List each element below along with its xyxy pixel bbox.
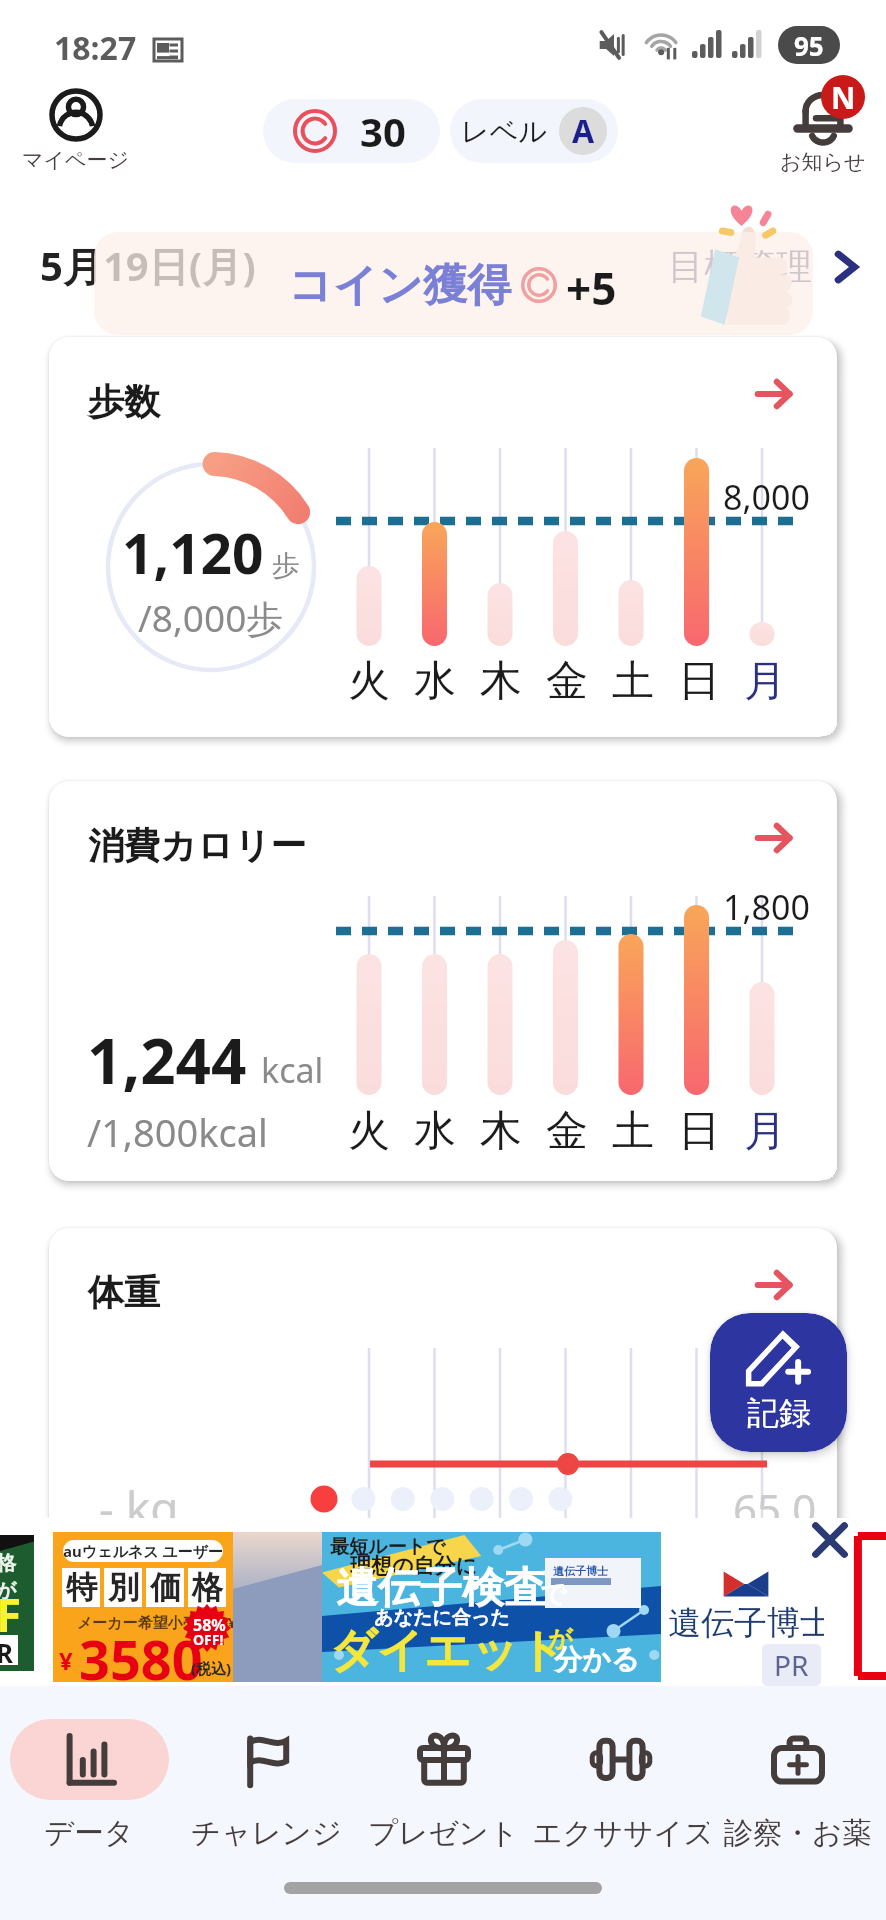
staticText: (税込) <box>191 1658 232 1678</box>
staticText: 18:27 <box>54 26 137 70</box>
staticText: 3580 <box>79 1622 203 1696</box>
button[interactable]: データ <box>0 1719 178 1852</box>
staticText: 日 <box>678 655 720 708</box>
button[interactable]: プレゼント <box>355 1719 532 1852</box>
staticText: 記録 <box>747 1393 811 1433</box>
button[interactable]: 詳細 <box>753 817 795 859</box>
button[interactable]: auウェルネス ユーザー様 <box>53 1532 233 1682</box>
staticText: 歩 <box>272 548 300 583</box>
staticText: 消費カロリー <box>88 823 307 868</box>
staticText: 火 <box>348 1105 390 1158</box>
staticText: 分かる <box>554 1642 640 1677</box>
staticText: +5 <box>566 258 617 318</box>
staticText: 遺伝子博士 <box>668 1602 824 1644</box>
staticText: F <box>0 1583 22 1646</box>
staticText: 1,800 <box>723 884 810 930</box>
staticText: コイン獲得 <box>288 258 512 313</box>
staticText: - kg <box>99 1476 179 1539</box>
staticText: PR <box>774 1646 809 1684</box>
staticText: 8,000 <box>723 474 810 520</box>
staticText: 土 <box>612 655 654 708</box>
staticText: 水 <box>414 1105 456 1158</box>
staticText: 格が <box>0 1551 30 1603</box>
staticText: 遺伝子検査 <box>336 1562 546 1615</box>
staticText: /1,800kcal <box>87 1106 268 1158</box>
staticText: 木 <box>480 655 522 708</box>
button[interactable]: 歩数 <box>49 337 837 737</box>
staticText: 別 <box>108 1568 139 1607</box>
staticText: 価 <box>150 1568 181 1607</box>
staticText: 1,120 <box>122 515 264 590</box>
staticText: 月 <box>744 1105 786 1158</box>
staticText: 遺伝子博士 <box>553 1564 608 1578</box>
staticText: N <box>831 77 856 118</box>
staticText: 診察・お薬 <box>723 1815 872 1852</box>
button[interactable]: 詳細 <box>753 373 795 415</box>
staticText: 最短ルートで <box>330 1535 446 1559</box>
staticText: A <box>572 109 595 153</box>
button[interactable]: チャレンジ <box>178 1719 355 1852</box>
button[interactable]: 30 <box>263 99 440 163</box>
button[interactable]: レベル <box>450 99 618 163</box>
staticText: 土 <box>612 1105 654 1158</box>
button[interactable]: 消費カロリー <box>49 781 837 1181</box>
staticText: 特 <box>66 1568 97 1607</box>
staticText: あなたに合った <box>374 1606 510 1630</box>
button[interactable]: 診察・お薬 <box>709 1719 886 1852</box>
staticText: エクササイズ <box>532 1815 709 1852</box>
staticText: メーカー希望小売価格¥8580 <box>77 1612 257 1632</box>
staticText: ¥ <box>59 1644 73 1677</box>
button[interactable]: 目標管理 <box>664 240 866 293</box>
staticText: 目標管理 <box>668 244 812 289</box>
button[interactable]: 閉じる <box>806 1516 854 1564</box>
staticText: 日 <box>678 1105 720 1158</box>
staticText: kcal <box>261 1047 324 1093</box>
staticText: 金 <box>546 1105 588 1158</box>
staticText: ダイエット <box>330 1622 566 1680</box>
staticText: 水 <box>414 655 456 708</box>
button[interactable]: N <box>774 88 872 175</box>
staticText: 95 <box>794 28 824 63</box>
button[interactable]: 詳細 <box>753 1264 795 1306</box>
button[interactable]: マイページ <box>16 88 135 173</box>
staticText: マイページ <box>22 147 129 173</box>
staticText: が <box>548 1624 573 1654</box>
staticText: 理想の自分に <box>350 1553 477 1579</box>
staticText: お知らせ <box>780 149 866 175</box>
staticText: 金 <box>546 655 588 708</box>
staticText: で <box>540 1578 567 1611</box>
staticText: 格 <box>192 1568 223 1607</box>
staticText: 火 <box>348 655 390 708</box>
staticText: チャレンジ <box>191 1815 342 1852</box>
staticText: /8,000歩 <box>138 592 284 643</box>
button[interactable]: エクササイズ <box>532 1719 709 1852</box>
staticText: 1,244 <box>87 1018 247 1102</box>
staticText: プレゼント <box>368 1815 519 1852</box>
staticText: auウェルネス ユーザー様 <box>63 1541 223 1561</box>
button[interactable]: 最短ルートで <box>322 1532 661 1682</box>
staticText: 体重 <box>88 1270 160 1315</box>
staticText: R <box>0 1635 14 1665</box>
staticText: 65.0 <box>733 1480 817 1537</box>
staticText: 30 <box>360 104 406 158</box>
button[interactable]: 体重 <box>49 1228 837 1628</box>
staticText: レベル <box>461 114 547 149</box>
staticText: OFF! <box>193 1630 224 1649</box>
staticText: データ <box>44 1815 134 1852</box>
staticText: 5月19日(月) <box>40 238 256 293</box>
button[interactable]: 記録 <box>710 1313 847 1452</box>
staticText: 木 <box>480 1105 522 1158</box>
staticText: 歩数 <box>88 379 160 424</box>
staticText: 58% <box>193 1614 226 1636</box>
staticText: 月 <box>744 655 786 708</box>
